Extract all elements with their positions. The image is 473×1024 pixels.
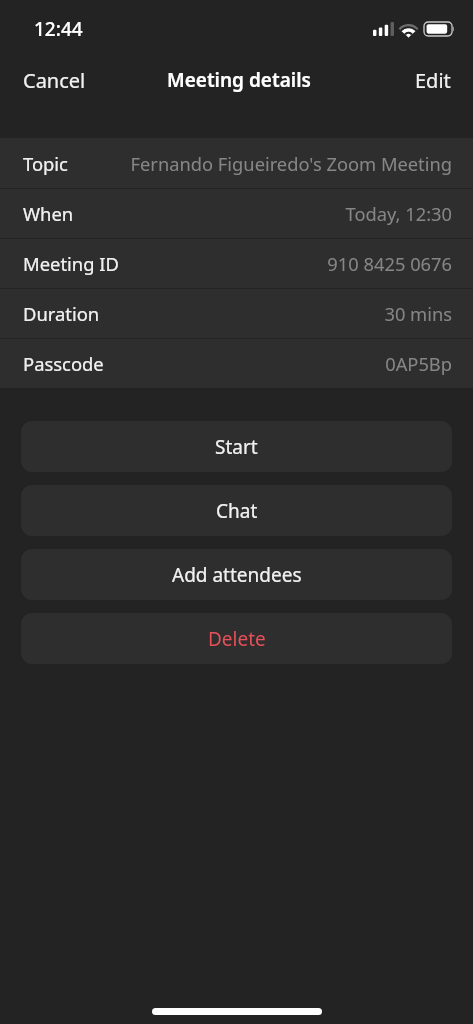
button[interactable]: Passcode	[0, 338, 473, 388]
button[interactable]: Meeting ID	[0, 238, 473, 288]
staticText: When	[23, 201, 74, 226]
button[interactable]: Add attendees	[21, 549, 452, 600]
staticText: Chat	[216, 498, 258, 524]
staticText: Meeting ID	[23, 251, 119, 276]
other: Wi-Fi connected	[400, 22, 417, 36]
other: Battery level	[424, 22, 454, 36]
button[interactable]: Start	[21, 421, 452, 472]
staticText: Passcode	[23, 351, 104, 376]
staticText: Today, 12:30	[84, 201, 452, 226]
button[interactable]: Duration	[0, 288, 473, 338]
button[interactable]: Chat	[21, 485, 452, 536]
button[interactable]: Delete	[21, 613, 452, 664]
staticText: 0AP5Bp	[114, 351, 452, 376]
staticText: 12:44	[34, 16, 83, 42]
staticText: Fernando Figueiredo's Zoom Meeting	[78, 151, 452, 176]
staticText: Topic	[23, 151, 68, 176]
other: Cellular signal strength	[373, 22, 394, 36]
staticText: Delete	[208, 626, 266, 652]
staticText: Add attendees	[172, 562, 302, 588]
staticText: Start	[215, 434, 258, 460]
staticText: Meeting details	[167, 67, 311, 93]
staticText: Edit	[415, 67, 451, 94]
button[interactable]: Cancel	[0, 54, 109, 107]
staticText: 910 8425 0676	[129, 251, 452, 276]
button[interactable]: When	[0, 188, 473, 238]
staticText: 30 mins	[110, 301, 452, 326]
staticText: Cancel	[23, 67, 86, 94]
staticText: Duration	[23, 301, 100, 326]
button[interactable]: Topic	[0, 138, 473, 188]
button[interactable]: Edit	[393, 54, 473, 107]
